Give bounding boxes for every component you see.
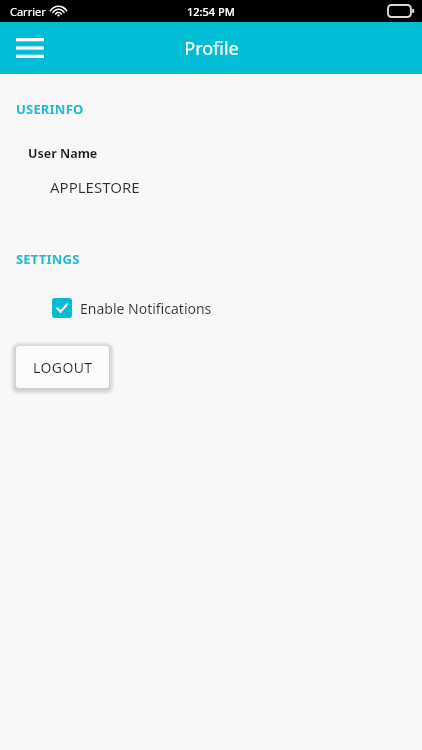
button[interactable]: Enable Notifications [46,294,218,322]
staticText: USERINFO [16,100,84,118]
staticText: APPLESTORE [50,177,140,197]
staticText: Carrier [10,4,46,19]
staticText: Profile [184,36,239,61]
staticText: 12:54 PM [187,4,235,19]
button[interactable]: LOGOUT [16,346,109,388]
staticText: SETTINGS [16,250,80,268]
staticText: Enable Notifications [80,299,212,318]
button[interactable]: Open navigation menu [8,26,52,70]
staticText: LOGOUT [33,358,93,377]
staticText: User Name [28,145,98,162]
